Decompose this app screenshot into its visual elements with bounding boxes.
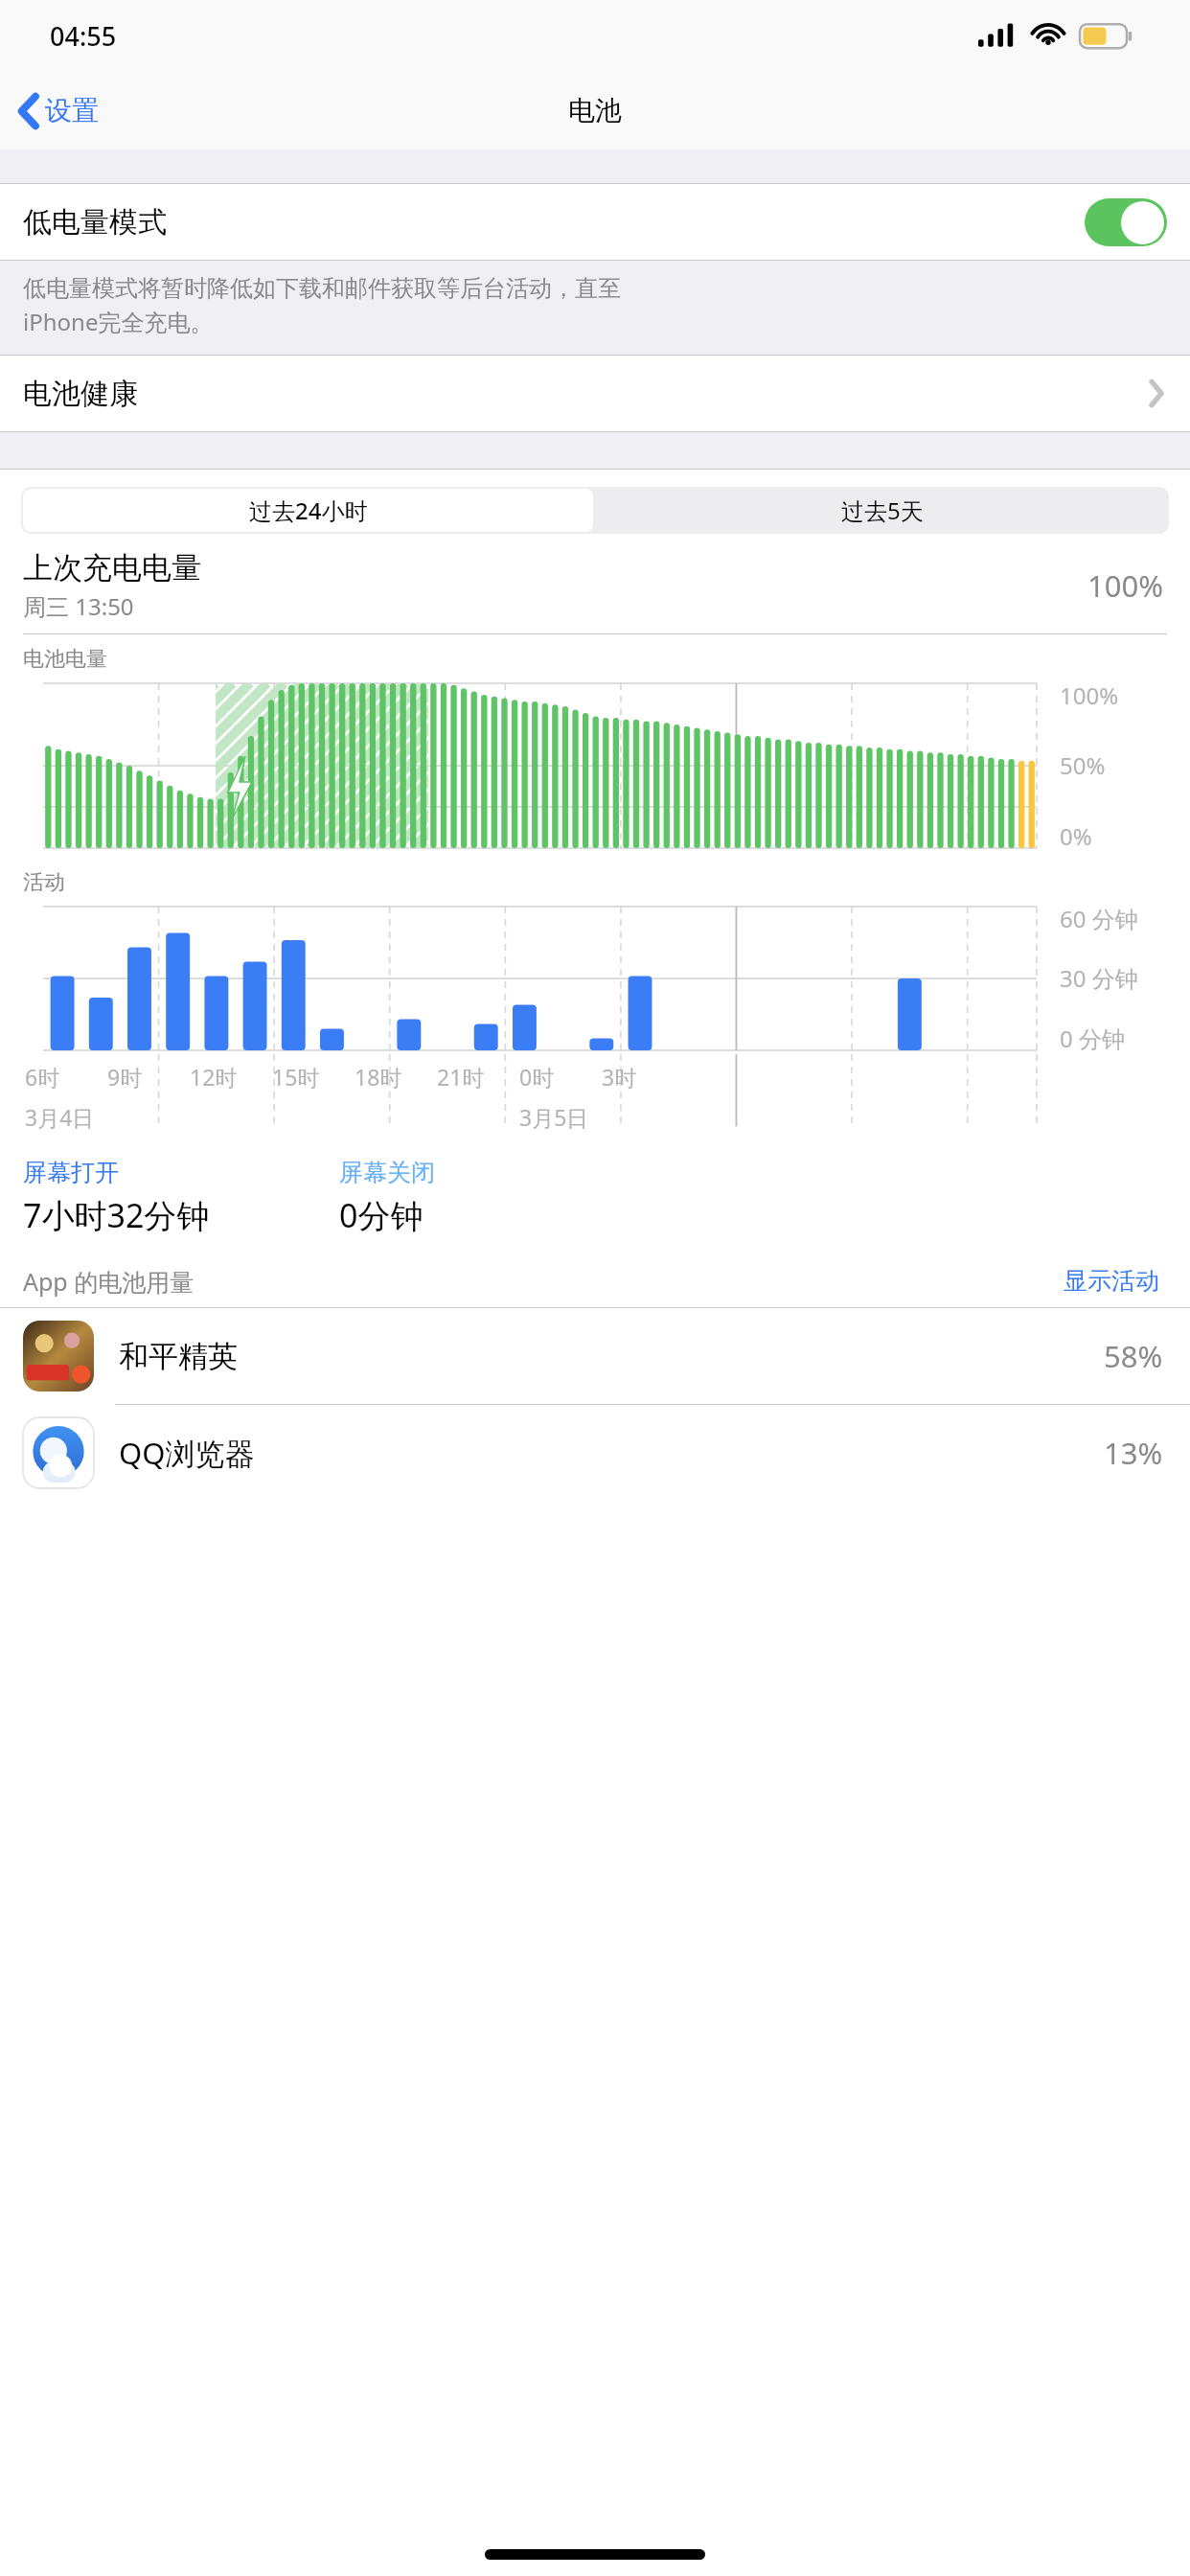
button[interactable]: 低电量模式: [0, 184, 1190, 260]
staticText: 6时: [25, 1062, 60, 1092]
staticText: 18时: [355, 1062, 402, 1092]
staticText: 和平精英: [119, 1338, 238, 1375]
button[interactable]: QQ浏览器: [0, 1405, 1190, 1501]
staticText: 58%: [1104, 1336, 1163, 1376]
staticText: 0时: [519, 1062, 555, 1092]
staticText: 12时: [190, 1062, 238, 1092]
staticText: 3月4日: [25, 1102, 95, 1132]
staticText: 30 分钟: [1060, 962, 1138, 994]
staticText: App 的电池用量: [23, 1265, 195, 1298]
staticText: 100%: [1060, 679, 1119, 711]
button[interactable]: 设置: [11, 86, 106, 135]
staticText: 3月5日: [519, 1102, 589, 1132]
staticText: 13%: [1104, 1433, 1163, 1473]
staticText: 3时: [602, 1062, 637, 1092]
staticText: 7小时32分钟: [23, 1193, 210, 1237]
staticText: 100%: [1087, 565, 1163, 606]
staticText: 设置: [45, 94, 99, 127]
staticText: 04:55: [50, 18, 117, 54]
button[interactable]: 低电量模式开关: [1085, 198, 1167, 246]
staticText: 电池: [568, 94, 622, 127]
staticText: 50%: [1060, 749, 1106, 781]
button[interactable]: 过去24小时: [23, 489, 593, 532]
staticText: 9时: [107, 1062, 143, 1092]
staticText: 电池健康: [23, 376, 138, 412]
staticText: QQ浏览器: [119, 1433, 255, 1473]
staticText: 周三 13:50: [23, 590, 134, 622]
staticText: 显示活动: [1064, 1266, 1159, 1296]
button[interactable]: 电池健康: [0, 356, 1190, 431]
staticText: 低电量模式: [23, 204, 167, 241]
staticText: 屏幕关闭: [339, 1158, 435, 1187]
staticText: 活动: [23, 869, 65, 896]
button[interactable]: 显示活动: [1060, 1262, 1163, 1299]
staticText: 15时: [272, 1062, 320, 1092]
staticText: 屏幕打开: [23, 1158, 119, 1187]
staticText: 过去24小时: [249, 494, 368, 526]
staticText: 低电量模式将暂时降低如下载和邮件获取等后台活动，直至 iPhone完全充电。: [23, 274, 621, 337]
button[interactable]: 和平精英: [0, 1308, 1190, 1404]
staticText: 0 分钟: [1060, 1023, 1125, 1054]
staticText: 21时: [437, 1062, 485, 1092]
staticText: 过去5天: [841, 494, 924, 526]
staticText: 电池电量: [23, 646, 107, 673]
staticText: 0分钟: [339, 1193, 423, 1237]
staticText: 0%: [1060, 820, 1092, 852]
staticText: 上次充电电量: [23, 549, 201, 586]
staticText: 60 分钟: [1060, 903, 1138, 934]
button[interactable]: 过去5天: [595, 487, 1169, 534]
